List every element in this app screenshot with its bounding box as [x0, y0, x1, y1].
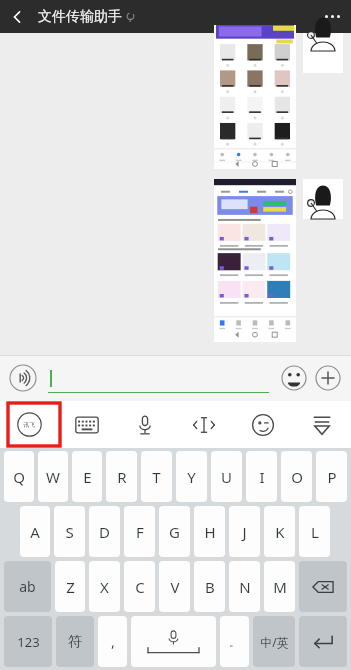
button[interactable]: F	[124, 506, 155, 557]
button[interactable]: Emoji	[279, 363, 309, 393]
button[interactable]: ,	[98, 616, 127, 667]
button[interactable]: Avatar	[303, 179, 343, 219]
button[interactable]: 中/英	[253, 616, 295, 667]
staticText: U	[221, 467, 232, 487]
staticText: P	[327, 467, 337, 487]
button[interactable]: Hide keyboard	[292, 401, 351, 448]
staticText: F	[136, 522, 144, 542]
button[interactable]: P	[316, 451, 347, 502]
button[interactable]	[48, 363, 269, 393]
button[interactable]: Z	[55, 561, 85, 612]
button[interactable]: More functions	[313, 363, 343, 393]
button[interactable]: Cursor move	[174, 401, 233, 448]
button[interactable]: Shared screenshot	[214, 25, 296, 169]
button[interactable]: Q	[4, 451, 34, 502]
staticText: 123	[17, 633, 40, 651]
button[interactable]: I	[246, 451, 277, 502]
button[interactable]: Keyboard	[58, 401, 116, 448]
staticText: O	[291, 467, 303, 487]
button[interactable]: Shared screenshot	[214, 179, 296, 342]
staticText: C	[135, 577, 145, 597]
button[interactable]: C	[124, 561, 155, 612]
staticText: L	[311, 522, 319, 542]
staticText: D	[99, 522, 110, 542]
button[interactable]: T	[141, 451, 172, 502]
button[interactable]: Back	[0, 0, 34, 33]
staticText: 符	[68, 633, 82, 651]
button[interactable]: Handwriting input	[0, 401, 58, 448]
button[interactable]: E	[72, 451, 102, 502]
button[interactable]: K	[264, 506, 295, 557]
staticText: H	[204, 522, 216, 542]
button[interactable]: Voice input	[8, 363, 38, 393]
staticText: Y	[187, 467, 196, 487]
staticText: ,	[111, 632, 115, 651]
staticText: B	[205, 577, 215, 597]
button[interactable]: Y	[176, 451, 207, 502]
staticText: K	[275, 522, 285, 542]
staticText: Z	[66, 577, 75, 597]
staticText: J	[242, 522, 247, 542]
button[interactable]: N	[229, 561, 260, 612]
staticText: M	[273, 577, 287, 597]
button[interactable]: W	[38, 451, 68, 502]
button[interactable]: D	[89, 506, 120, 557]
staticText: G	[169, 522, 180, 542]
staticText: R	[117, 467, 127, 487]
button[interactable]: X	[89, 561, 120, 612]
staticText: 。	[229, 635, 240, 649]
staticText: Q	[13, 467, 25, 487]
staticText: N	[239, 577, 251, 597]
staticText: T	[152, 467, 161, 487]
button[interactable]: H	[194, 506, 225, 557]
button[interactable]: 符	[56, 616, 94, 667]
button[interactable]: V	[159, 561, 190, 612]
staticText: A	[30, 522, 40, 542]
button[interactable]: Space, voice input	[131, 616, 216, 667]
button[interactable]: M	[264, 561, 295, 612]
button[interactable]: R	[106, 451, 137, 502]
button[interactable]: B	[194, 561, 225, 612]
button[interactable]: Emoticons	[233, 401, 292, 448]
button[interactable]: Backspace	[299, 561, 347, 612]
button[interactable]: A	[20, 506, 50, 557]
button[interactable]: More options	[313, 0, 351, 33]
button[interactable]: L	[299, 506, 330, 557]
button[interactable]: 。	[220, 616, 249, 667]
button[interactable]: Enter	[299, 616, 347, 667]
staticText: ab	[19, 577, 36, 596]
staticText: W	[46, 467, 60, 487]
staticText: V	[170, 577, 180, 597]
button[interactable]: J	[229, 506, 260, 557]
button[interactable]: 123	[4, 616, 52, 667]
staticText: S	[65, 522, 74, 542]
staticText: 文件传输助手	[38, 8, 122, 26]
button[interactable]: S	[54, 506, 85, 557]
staticText: 中/英	[260, 634, 289, 650]
staticText: E	[83, 467, 92, 487]
staticText: X	[100, 577, 109, 597]
button[interactable]: U	[211, 451, 242, 502]
button[interactable]: ab	[4, 561, 51, 612]
button[interactable]: O	[281, 451, 312, 502]
staticText: 讯飞	[23, 421, 35, 429]
button[interactable]: G	[159, 506, 190, 557]
button[interactable]: Avatar	[303, 33, 343, 73]
button[interactable]: Voice	[116, 401, 174, 448]
staticText: I	[259, 467, 265, 487]
